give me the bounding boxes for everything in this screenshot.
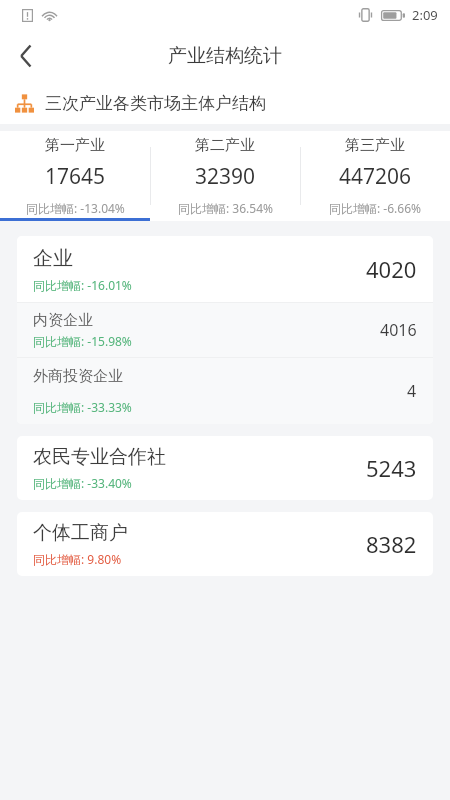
button[interactable]: 第一产业: [0, 131, 150, 221]
staticText: 同比增幅: 9.80%: [33, 551, 122, 567]
button[interactable]: Back: [0, 30, 52, 82]
staticText: 产业结构统计: [168, 44, 282, 68]
staticText: 同比增幅: -16.01%: [33, 277, 132, 293]
staticText: 企业: [33, 246, 73, 271]
staticText: 5243: [366, 453, 417, 483]
staticText: 第二产业: [195, 136, 255, 155]
staticText: 32390: [195, 162, 256, 191]
staticText: 17645: [45, 162, 106, 191]
button[interactable]: 企业: [17, 236, 433, 302]
staticText: 同比增幅: -15.98%: [33, 333, 132, 349]
staticText: 4: [407, 380, 417, 402]
button[interactable]: 个体工商户: [17, 512, 433, 576]
staticText: 外商投资企业: [33, 367, 123, 386]
staticText: 4020: [366, 254, 417, 284]
staticText: 8382: [366, 529, 417, 559]
staticText: 2:09: [412, 6, 438, 24]
staticText: 内资企业: [33, 311, 93, 330]
staticText: 个体工商户: [33, 521, 128, 545]
button[interactable]: 内资企业: [17, 303, 433, 357]
button[interactable]: 第三产业: [300, 131, 450, 221]
staticText: 农民专业合作社: [33, 445, 166, 469]
staticText: 同比增幅: -13.04%: [26, 200, 125, 216]
staticText: 同比增幅: -33.40%: [33, 475, 132, 491]
staticText: 同比增幅: 36.54%: [178, 200, 273, 216]
button[interactable]: 外商投资企业: [17, 358, 433, 424]
staticText: 4016: [380, 319, 417, 341]
button[interactable]: 第二产业: [150, 131, 300, 221]
staticText: 同比增幅: -33.33%: [33, 399, 132, 415]
staticText: 同比增幅: -6.66%: [329, 200, 421, 216]
staticText: 447206: [339, 162, 412, 191]
staticText: 三次产业各类市场主体户结构: [45, 93, 266, 114]
staticText: 第一产业: [45, 136, 105, 155]
staticText: 第三产业: [345, 136, 405, 155]
button[interactable]: 农民专业合作社: [17, 436, 433, 500]
